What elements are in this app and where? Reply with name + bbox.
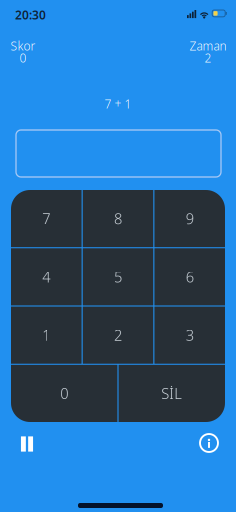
button[interactable]: 7 [11, 190, 82, 247]
staticText: 7 + 1 [104, 96, 131, 112]
button[interactable]: SİL [118, 365, 225, 422]
staticText: 8 [114, 209, 122, 228]
staticText: 9 [186, 209, 194, 228]
staticText: 6 [186, 267, 194, 287]
staticText: 2 [114, 325, 122, 345]
button[interactable]: 2 [83, 307, 153, 364]
staticText: 1 [42, 325, 50, 345]
staticText: 20:30 [15, 7, 46, 23]
staticText: Zaman [189, 38, 226, 54]
button[interactable]: 3 [154, 307, 225, 364]
button[interactable]: Info [191, 429, 227, 457]
staticText: 4 [42, 267, 50, 287]
staticText: SİL [161, 384, 182, 403]
button[interactable]: 9 [154, 190, 225, 247]
staticText: 0 [19, 50, 26, 66]
staticText: 5 [114, 267, 122, 287]
button[interactable]: 5 [83, 248, 153, 305]
staticText: 0 [60, 384, 68, 403]
button[interactable]: 4 [11, 248, 82, 305]
staticText: 2 [204, 50, 211, 66]
button[interactable]: 1 [11, 307, 82, 364]
staticText: 7 [42, 209, 50, 228]
staticText: 3 [186, 325, 194, 345]
button[interactable]: 8 [83, 190, 153, 247]
button[interactable]: 0 [11, 365, 117, 422]
button[interactable]: Pause [9, 430, 45, 458]
button[interactable]: 6 [154, 248, 225, 305]
staticText: Skor [10, 38, 35, 54]
